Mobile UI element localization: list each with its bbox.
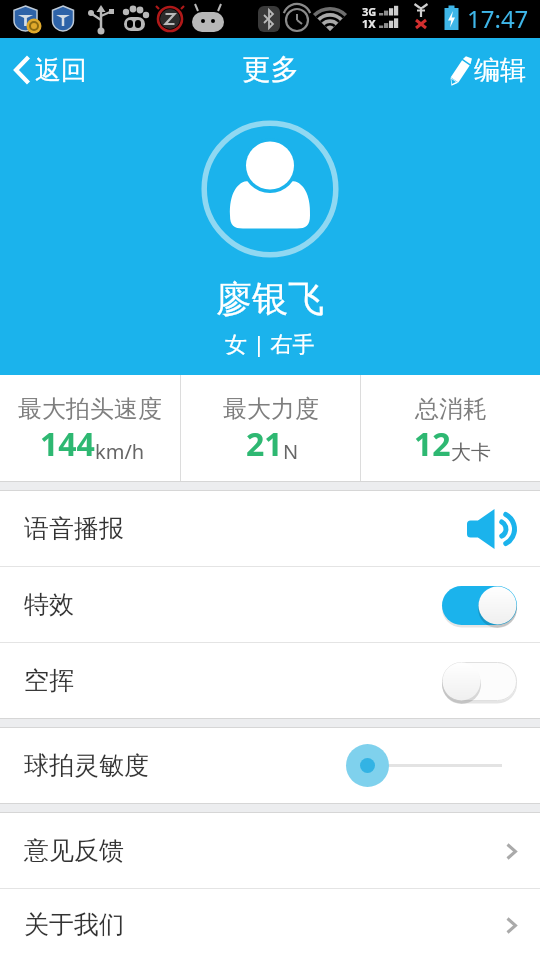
staticText: 更多	[242, 52, 299, 88]
button[interactable]: Voice broadcast	[451, 491, 517, 566]
button[interactable]: Back	[0, 38, 101, 102]
staticText: 17:47	[467, 2, 529, 35]
staticText: 144	[40, 422, 95, 466]
staticText: 总消耗	[415, 394, 487, 424]
button[interactable]: 语音播报	[0, 491, 540, 566]
staticText: 关于我们	[24, 909, 124, 940]
staticText: 编辑	[474, 54, 526, 87]
staticText: 最大拍头速度	[18, 394, 162, 424]
staticText: 空挥	[24, 665, 74, 696]
staticText: 大卡	[451, 440, 491, 465]
staticText: N	[283, 438, 299, 465]
staticText: 特效	[24, 589, 74, 620]
staticText: 返回	[35, 54, 87, 87]
button[interactable]: 意见反馈	[0, 813, 540, 888]
staticText: km/h	[95, 438, 145, 465]
button[interactable]: Switch on	[442, 579, 517, 631]
staticText: 女 | 右手	[225, 328, 315, 358]
button[interactable]: 球拍灵敏度	[0, 728, 540, 803]
button[interactable]: Open	[483, 899, 517, 951]
button[interactable]: Racket sensitivity	[340, 728, 517, 803]
staticText: 语音播报	[24, 513, 124, 544]
button[interactable]: 关于我们	[0, 889, 540, 960]
staticText: 最大力度	[223, 394, 319, 424]
button[interactable]: 空挥	[0, 643, 540, 718]
staticText: 1X	[362, 16, 376, 31]
staticText: 廖银飞	[216, 276, 324, 321]
staticText: 3G	[362, 4, 377, 19]
staticText: 12	[414, 422, 451, 466]
button[interactable]: Open	[483, 825, 517, 877]
staticText: 21	[246, 422, 283, 466]
button[interactable]: Edit	[440, 38, 540, 102]
button[interactable]: Switch off	[442, 655, 517, 707]
button[interactable]: 特效	[0, 567, 540, 642]
staticText: 球拍灵敏度	[24, 750, 149, 781]
staticText: 意见反馈	[24, 835, 124, 866]
